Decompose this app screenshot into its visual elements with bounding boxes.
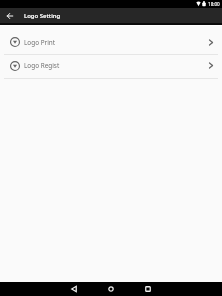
button[interactable]: Logo Regist xyxy=(0,55,222,78)
button[interactable]: Back xyxy=(0,8,20,23)
staticText: Logo Print xyxy=(24,38,56,47)
staticText: Logo Setting xyxy=(24,12,61,20)
button[interactable]: Back xyxy=(59,282,89,296)
button[interactable]: Logo Print xyxy=(0,30,222,54)
staticText: Logo Regist xyxy=(24,61,60,70)
staticText: 18:00 xyxy=(208,1,220,7)
button[interactable]: Recent apps xyxy=(133,282,163,296)
button[interactable]: Home xyxy=(96,282,126,296)
